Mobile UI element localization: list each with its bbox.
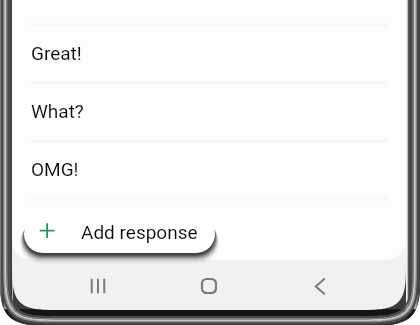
button[interactable]: Back [296, 271, 344, 301]
staticText: Add response [81, 221, 198, 243]
button[interactable]: Home [185, 271, 233, 301]
button[interactable]: Add response [24, 215, 215, 253]
staticText: OMG! [31, 158, 79, 180]
button[interactable]: Recent apps [74, 271, 122, 301]
button[interactable]: What? [12, 83, 406, 140]
staticText: Great! [31, 42, 82, 64]
button[interactable]: OMG! [12, 141, 406, 198]
button[interactable]: Great! [12, 25, 406, 82]
staticText: What? [31, 100, 84, 122]
